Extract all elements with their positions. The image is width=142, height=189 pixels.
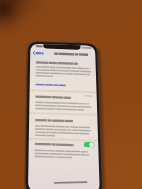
button[interactable]: Zurück bbox=[31, 49, 47, 57]
button[interactable]: Mehr erfahren bbox=[33, 80, 67, 87]
button[interactable]: Einstellung umschalten bbox=[82, 138, 97, 147]
